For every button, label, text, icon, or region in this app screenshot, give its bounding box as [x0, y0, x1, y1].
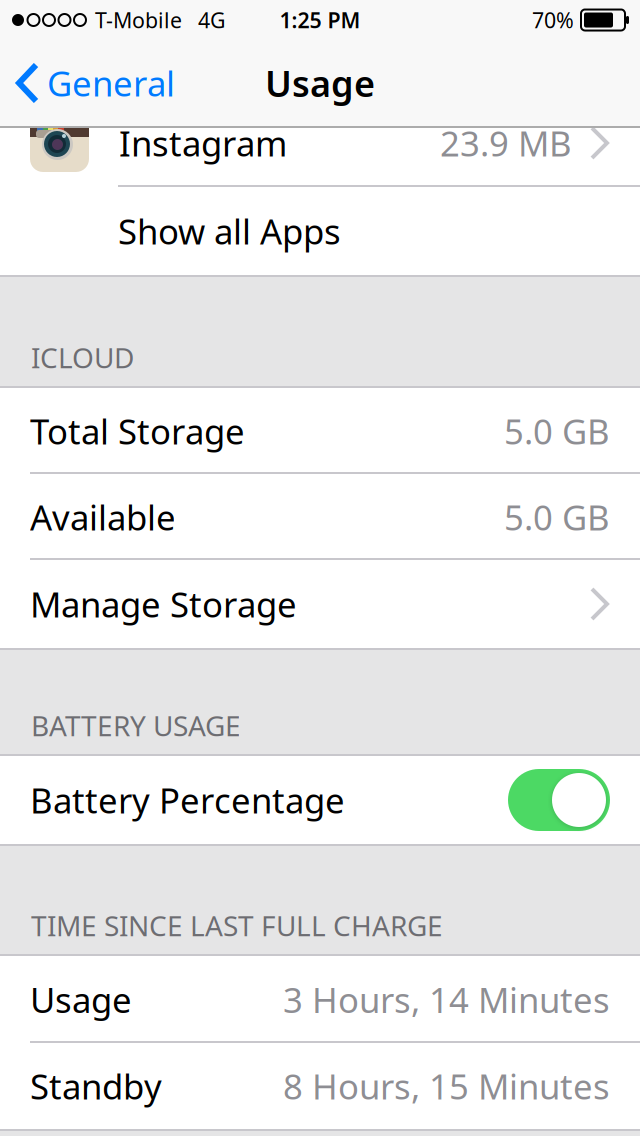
staticText: Usage: [30, 976, 132, 1022]
button[interactable]: Show all Apps: [0, 187, 640, 275]
staticText: Instagram: [119, 120, 287, 166]
staticText: General: [47, 60, 175, 106]
staticText: T-Mobile: [95, 6, 182, 34]
staticText: 23.9 MB: [440, 120, 572, 166]
staticText: Manage Storage: [30, 581, 297, 627]
staticText: TIME SINCE LAST FULL CHARGE: [31, 907, 443, 944]
staticText: BATTERY USAGE: [31, 707, 241, 744]
staticText: Battery Percentage: [30, 777, 345, 823]
staticText: 70%: [532, 6, 574, 34]
staticText: 8 Hours, 15 Minutes: [283, 1063, 610, 1109]
staticText: 3 Hours, 14 Minutes: [283, 976, 610, 1022]
button[interactable]: Back to General: [0, 60, 175, 106]
button[interactable]: Manage Storage: [0, 560, 640, 648]
staticText: Total Storage: [30, 408, 245, 454]
staticText: 5.0 GB: [504, 408, 610, 454]
staticText: Show all Apps: [118, 208, 341, 254]
staticText: 4G: [198, 6, 226, 34]
staticText: Standby: [30, 1063, 162, 1109]
button[interactable]: Instagram: [0, 99, 640, 187]
staticText: Available: [30, 494, 176, 540]
staticText: ICLOUD: [31, 339, 134, 376]
staticText: 1:25 PM: [279, 6, 360, 34]
button[interactable]: Battery Percentage: [508, 769, 610, 831]
staticText: Usage: [265, 59, 375, 107]
staticText: 5.0 GB: [504, 494, 610, 540]
